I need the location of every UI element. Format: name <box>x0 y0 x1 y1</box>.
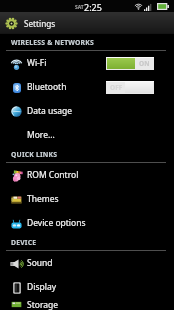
staticText: QUICK LINKS <box>11 150 58 159</box>
staticText: SAT <box>75 4 84 11</box>
button[interactable]: On <box>106 57 154 70</box>
staticText: WIRELESS & NETWORKS <box>11 38 94 47</box>
button[interactable]: Display <box>0 275 174 299</box>
staticText: Wi-Fi <box>27 57 47 69</box>
staticText: Settings <box>24 18 56 29</box>
staticText: Device options <box>27 217 86 229</box>
button[interactable]: Storage <box>0 299 174 310</box>
staticText: ROM Control <box>27 169 79 181</box>
staticText: Display <box>27 281 56 293</box>
button[interactable]: Sound <box>0 251 174 275</box>
staticText: Sound <box>27 257 53 269</box>
staticText: Bluetooth <box>27 81 67 93</box>
button[interactable]: Bluetooth <box>0 75 174 99</box>
button[interactable]: More... <box>0 123 174 147</box>
button[interactable]: Themes <box>0 187 174 211</box>
staticText: OFF <box>110 83 123 92</box>
staticText: Storage <box>27 299 59 310</box>
button[interactable]: Device options <box>0 211 174 235</box>
staticText: ON <box>139 59 150 68</box>
button[interactable]: ROM Control <box>0 163 174 187</box>
staticText: Data usage <box>27 105 73 117</box>
staticText: DEVICE <box>11 238 37 247</box>
staticText: Themes <box>27 193 59 205</box>
button[interactable]: Wi-Fi <box>0 51 174 75</box>
button[interactable]: Data usage <box>0 99 174 123</box>
staticText: 2:25 <box>84 1 102 13</box>
staticText: More... <box>27 129 55 141</box>
button[interactable]: Off <box>106 81 154 94</box>
